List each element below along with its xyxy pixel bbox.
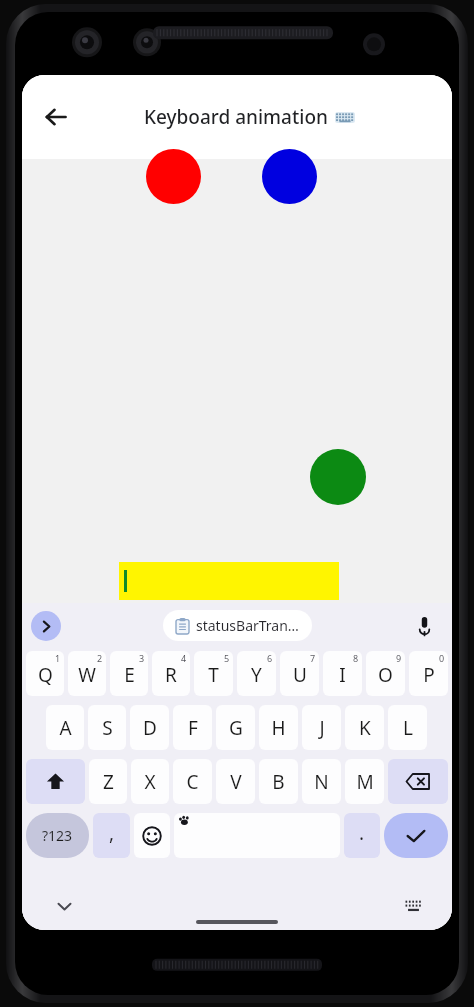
button[interactable]: Back <box>32 93 80 141</box>
button[interactable]: W <box>68 651 106 696</box>
staticText: A <box>59 715 72 741</box>
button[interactable]: R <box>152 651 190 696</box>
staticText: 0 <box>439 652 445 664</box>
button[interactable]: Z <box>89 759 127 804</box>
staticText: V <box>230 769 242 795</box>
button[interactable]: B <box>259 759 298 804</box>
button[interactable]: O <box>366 651 405 696</box>
staticText: , <box>109 820 115 846</box>
button[interactable]: Shift <box>26 759 85 804</box>
button[interactable]: statusBarTran… <box>163 610 312 641</box>
button[interactable]: C <box>173 759 212 804</box>
button[interactable]: E <box>110 651 148 696</box>
staticText: E <box>124 662 135 688</box>
staticText: C <box>186 769 199 795</box>
staticText: Y <box>251 662 262 688</box>
button[interactable]: V <box>216 759 255 804</box>
staticText: T <box>208 662 219 688</box>
button[interactable]: N <box>302 759 341 804</box>
button[interactable]: Space <box>174 813 340 858</box>
staticText: S <box>102 715 113 741</box>
button[interactable]: D <box>130 705 169 750</box>
button[interactable]: Backspace <box>388 759 448 804</box>
staticText: . <box>359 820 365 846</box>
button[interactable]: U <box>280 651 319 696</box>
staticText: U <box>293 662 307 688</box>
staticText: 7 <box>310 652 316 664</box>
button[interactable]: ?123 <box>26 813 89 858</box>
staticText: 2 <box>97 652 103 664</box>
button[interactable]: Hide keyboard <box>47 889 81 923</box>
staticText: P <box>423 662 435 688</box>
button[interactable]: Enter <box>384 813 448 858</box>
staticText: 5 <box>224 652 230 664</box>
staticText: D <box>143 715 157 741</box>
staticText: 4 <box>181 652 187 664</box>
staticText: 9 <box>396 652 402 664</box>
staticText: F <box>188 715 198 741</box>
button[interactable] <box>119 562 339 600</box>
button[interactable]: G <box>216 705 255 750</box>
button[interactable]: I <box>323 651 362 696</box>
button[interactable]: Switch keyboard <box>396 889 430 923</box>
button[interactable]: Emoji <box>134 813 170 858</box>
staticText: M <box>356 769 374 795</box>
staticText: O <box>378 662 393 688</box>
button[interactable]: F <box>173 705 212 750</box>
staticText: ?123 <box>42 826 73 845</box>
staticText: Z <box>103 769 114 795</box>
button[interactable]: Voice input <box>408 610 440 642</box>
button[interactable]: Y <box>237 651 276 696</box>
button[interactable]: P <box>409 651 448 696</box>
staticText: X <box>144 769 156 795</box>
staticText: K <box>359 715 371 741</box>
button[interactable]: M <box>345 759 384 804</box>
staticText: 1 <box>55 652 61 664</box>
button[interactable]: Expand suggestions <box>31 611 61 641</box>
staticText: Keyboard animation <box>144 104 328 130</box>
button[interactable]: Q <box>26 651 64 696</box>
button[interactable]: L <box>388 705 427 750</box>
staticText: 6 <box>267 652 273 664</box>
button[interactable]: K <box>345 705 384 750</box>
staticText: Q <box>38 662 53 688</box>
staticText: G <box>229 715 243 741</box>
button[interactable]: S <box>88 705 126 750</box>
staticText: B <box>272 769 285 795</box>
button[interactable]: J <box>302 705 341 750</box>
button[interactable]: . <box>344 813 380 858</box>
staticText: I <box>339 662 346 688</box>
staticText: 3 <box>139 652 145 664</box>
staticText: 8 <box>353 652 359 664</box>
button[interactable]: A <box>46 705 84 750</box>
button[interactable]: , <box>93 813 130 858</box>
staticText: H <box>271 715 286 741</box>
staticText: statusBarTran… <box>196 616 299 635</box>
staticText: R <box>165 662 177 688</box>
staticText: L <box>403 715 413 741</box>
staticText: W <box>78 662 96 688</box>
button[interactable]: X <box>131 759 169 804</box>
button[interactable]: H <box>259 705 298 750</box>
button[interactable]: T <box>194 651 233 696</box>
staticText: J <box>319 715 325 741</box>
staticText: N <box>314 769 329 795</box>
